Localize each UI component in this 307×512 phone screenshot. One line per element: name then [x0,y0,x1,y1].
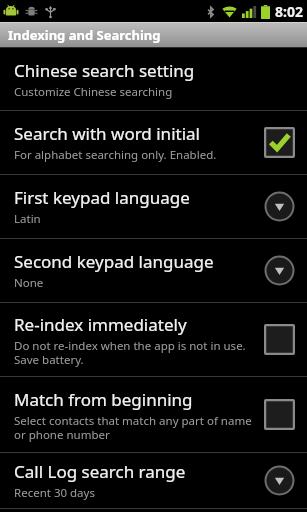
staticText: Do not re-index when the app is not in u… [14,338,256,367]
button[interactable]: Checked [264,127,295,158]
staticText: Recent 30 days [14,485,95,501]
staticText: Select contacts that match any part of n… [14,413,256,442]
staticText: None [14,275,44,291]
button[interactable]: First keypad language [0,175,307,238]
staticText: Call Log search range [14,460,186,483]
button[interactable]: Open options [264,465,295,496]
button[interactable]: Open options [264,255,295,286]
button[interactable]: Search with word initial [0,111,307,174]
button[interactable]: Unchecked [264,324,295,355]
staticText: 8:02 [275,2,303,21]
button[interactable]: Chinese search setting [0,48,307,110]
staticText: Search with word initial [14,122,200,145]
staticText: Latin [14,211,41,227]
button[interactable]: Match from beginning [0,377,307,452]
staticText: Indexing and Searching [8,26,161,44]
staticText: Re-index immediately [14,313,187,336]
button[interactable]: Second keypad language [0,239,307,302]
staticText: For alphabet searching only. Enabled. [14,147,217,163]
staticText: First keypad language [14,186,190,209]
button[interactable]: Call Log search range [0,453,307,508]
button[interactable]: Unchecked [264,399,295,430]
staticText: Second keypad language [14,250,214,273]
button[interactable]: Re-index immediately [0,303,307,376]
button[interactable]: Open options [264,191,295,222]
staticText: Customize Chinese searching [14,84,173,100]
staticText: Match from beginning [14,388,193,411]
staticText: Chinese search setting [14,59,195,82]
